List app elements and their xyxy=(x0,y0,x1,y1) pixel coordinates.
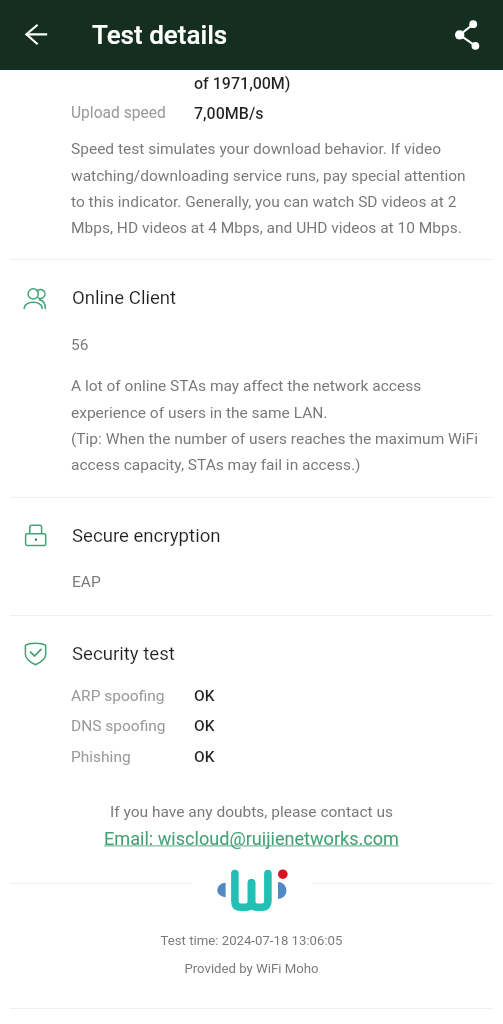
staticText: Provided by WiFi Moho xyxy=(0,961,503,976)
staticText: Upload speed xyxy=(71,104,166,122)
button[interactable]: Share xyxy=(443,11,491,59)
button[interactable]: Email: wiscloud@ruijienetworks.com xyxy=(0,828,503,849)
staticText: DNS spoofing xyxy=(71,717,166,735)
staticText: OK xyxy=(194,687,215,705)
staticText: Online Client xyxy=(72,287,177,309)
staticText: Speed test simulates your download behav… xyxy=(71,140,471,237)
staticText: EAP xyxy=(72,573,101,591)
staticText: Phishing xyxy=(71,748,131,766)
staticText: A lot of online STAs may affect the netw… xyxy=(71,377,495,474)
staticText: Secure encryption xyxy=(72,525,221,547)
button[interactable]: Back xyxy=(12,11,60,59)
staticText: 56 xyxy=(71,336,89,354)
staticText: OK xyxy=(194,717,215,735)
staticText: If you have any doubts, please contact u… xyxy=(0,803,503,821)
staticText: ARP spoofing xyxy=(71,687,165,705)
staticText: Test details xyxy=(92,20,228,50)
staticText: 7,00MB/s xyxy=(194,104,264,123)
staticText: Security test xyxy=(72,643,175,665)
staticText: of 1971,00M) xyxy=(194,74,291,93)
staticText: OK xyxy=(194,748,215,766)
staticText: Test time: 2024-07-18 13:06:05 xyxy=(0,933,503,948)
